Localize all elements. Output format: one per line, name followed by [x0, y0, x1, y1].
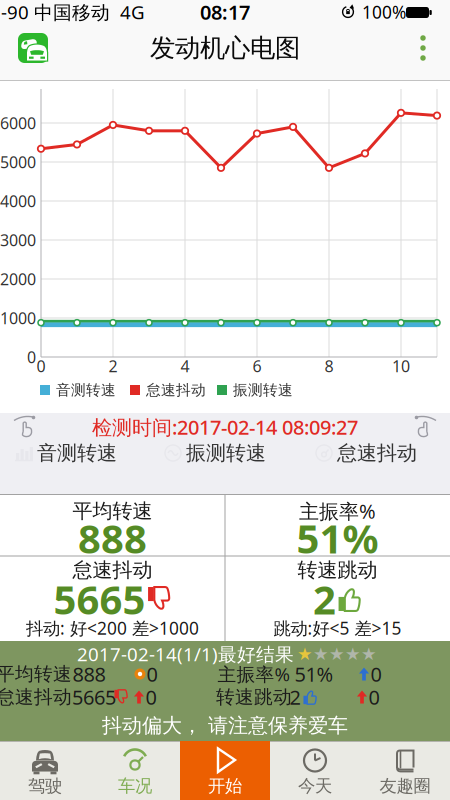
staticText: 51%: [294, 661, 333, 687]
staticText: 抖动: 好<200 差>1000: [26, 616, 199, 639]
staticText: 5665: [72, 684, 116, 710]
staticText: 友趣圈: [379, 775, 430, 797]
button[interactable]: 振测转速: [164, 441, 266, 465]
staticText: 抖动偏大， 请注意保养爱车: [102, 713, 348, 738]
button[interactable]: 音测转速: [15, 441, 117, 465]
staticText: 跳动:好<5 差>15: [273, 616, 401, 639]
staticText: 0: [146, 661, 157, 687]
staticText: 怠速抖动: [337, 441, 417, 465]
button[interactable]: 怠速抖动: [315, 441, 417, 465]
staticText: 音测转速: [56, 381, 116, 399]
staticText: 发动机心电图: [150, 32, 300, 63]
staticText: 振测转速: [186, 441, 266, 465]
staticText: 5665: [53, 572, 145, 625]
staticText: 主振率%: [217, 662, 290, 686]
staticText: ★★★★: [313, 644, 377, 664]
staticText: 08:17: [200, 0, 250, 25]
staticText: 2: [313, 572, 336, 625]
staticText: 2: [289, 684, 300, 710]
staticText: 0: [145, 684, 156, 710]
staticText: 888: [72, 661, 105, 687]
staticText: 2000: [0, 268, 36, 290]
staticText: 3000: [0, 229, 36, 251]
button[interactable]: 今天: [270, 741, 360, 800]
staticText: 车况: [118, 775, 152, 797]
button[interactable]: 驾驶: [0, 741, 90, 800]
staticText: 振测转速: [233, 381, 293, 399]
button[interactable]: 车辆: [18, 33, 48, 63]
staticText: 音测转速: [37, 441, 117, 465]
staticText: 开始: [208, 775, 242, 797]
staticText: 0: [27, 346, 36, 368]
staticText: 4000: [0, 190, 36, 212]
staticText: 平均转速: [0, 662, 72, 685]
staticText: 怠速抖动: [72, 558, 152, 582]
staticText: 转速跳动: [297, 558, 377, 582]
staticText: ★: [297, 644, 313, 664]
staticText: 5000: [0, 151, 36, 173]
staticText: 今天: [298, 775, 332, 797]
button[interactable]: 车况: [90, 741, 180, 800]
staticText: 6000: [0, 112, 36, 134]
staticText: 怠速抖动: [146, 381, 206, 399]
staticText: -90 中国移动 4G: [1, 0, 145, 24]
staticText: 0: [368, 684, 379, 710]
staticText: 主振率%: [299, 498, 376, 524]
button[interactable]: 友趣圈: [360, 741, 450, 800]
staticText: 4: [180, 355, 189, 377]
staticText: 51%: [296, 511, 378, 564]
staticText: 怠速抖动: [0, 685, 72, 708]
button[interactable]: 下一条记录: [412, 414, 438, 437]
button[interactable]: 上一条记录: [12, 414, 38, 437]
button[interactable]: 更多: [408, 28, 438, 68]
staticText: 2: [108, 355, 117, 377]
staticText: 100%: [362, 0, 406, 23]
staticText: 6: [252, 355, 261, 377]
staticText: 10: [392, 355, 410, 377]
staticText: 转速跳动: [216, 685, 292, 708]
staticText: 0: [36, 355, 45, 377]
staticText: 驾驶: [28, 775, 62, 797]
staticText: 0: [370, 661, 381, 687]
staticText: 2017-02-14(1/1)最好结果: [77, 642, 294, 666]
staticText: 1000: [0, 307, 36, 329]
staticText: 8: [324, 355, 333, 377]
staticText: 平均转速: [72, 499, 152, 523]
staticText: 检测时间:2017-02-14 08:09:27: [92, 414, 358, 440]
staticText: 888: [78, 511, 147, 564]
button[interactable]: 开始: [180, 741, 270, 800]
